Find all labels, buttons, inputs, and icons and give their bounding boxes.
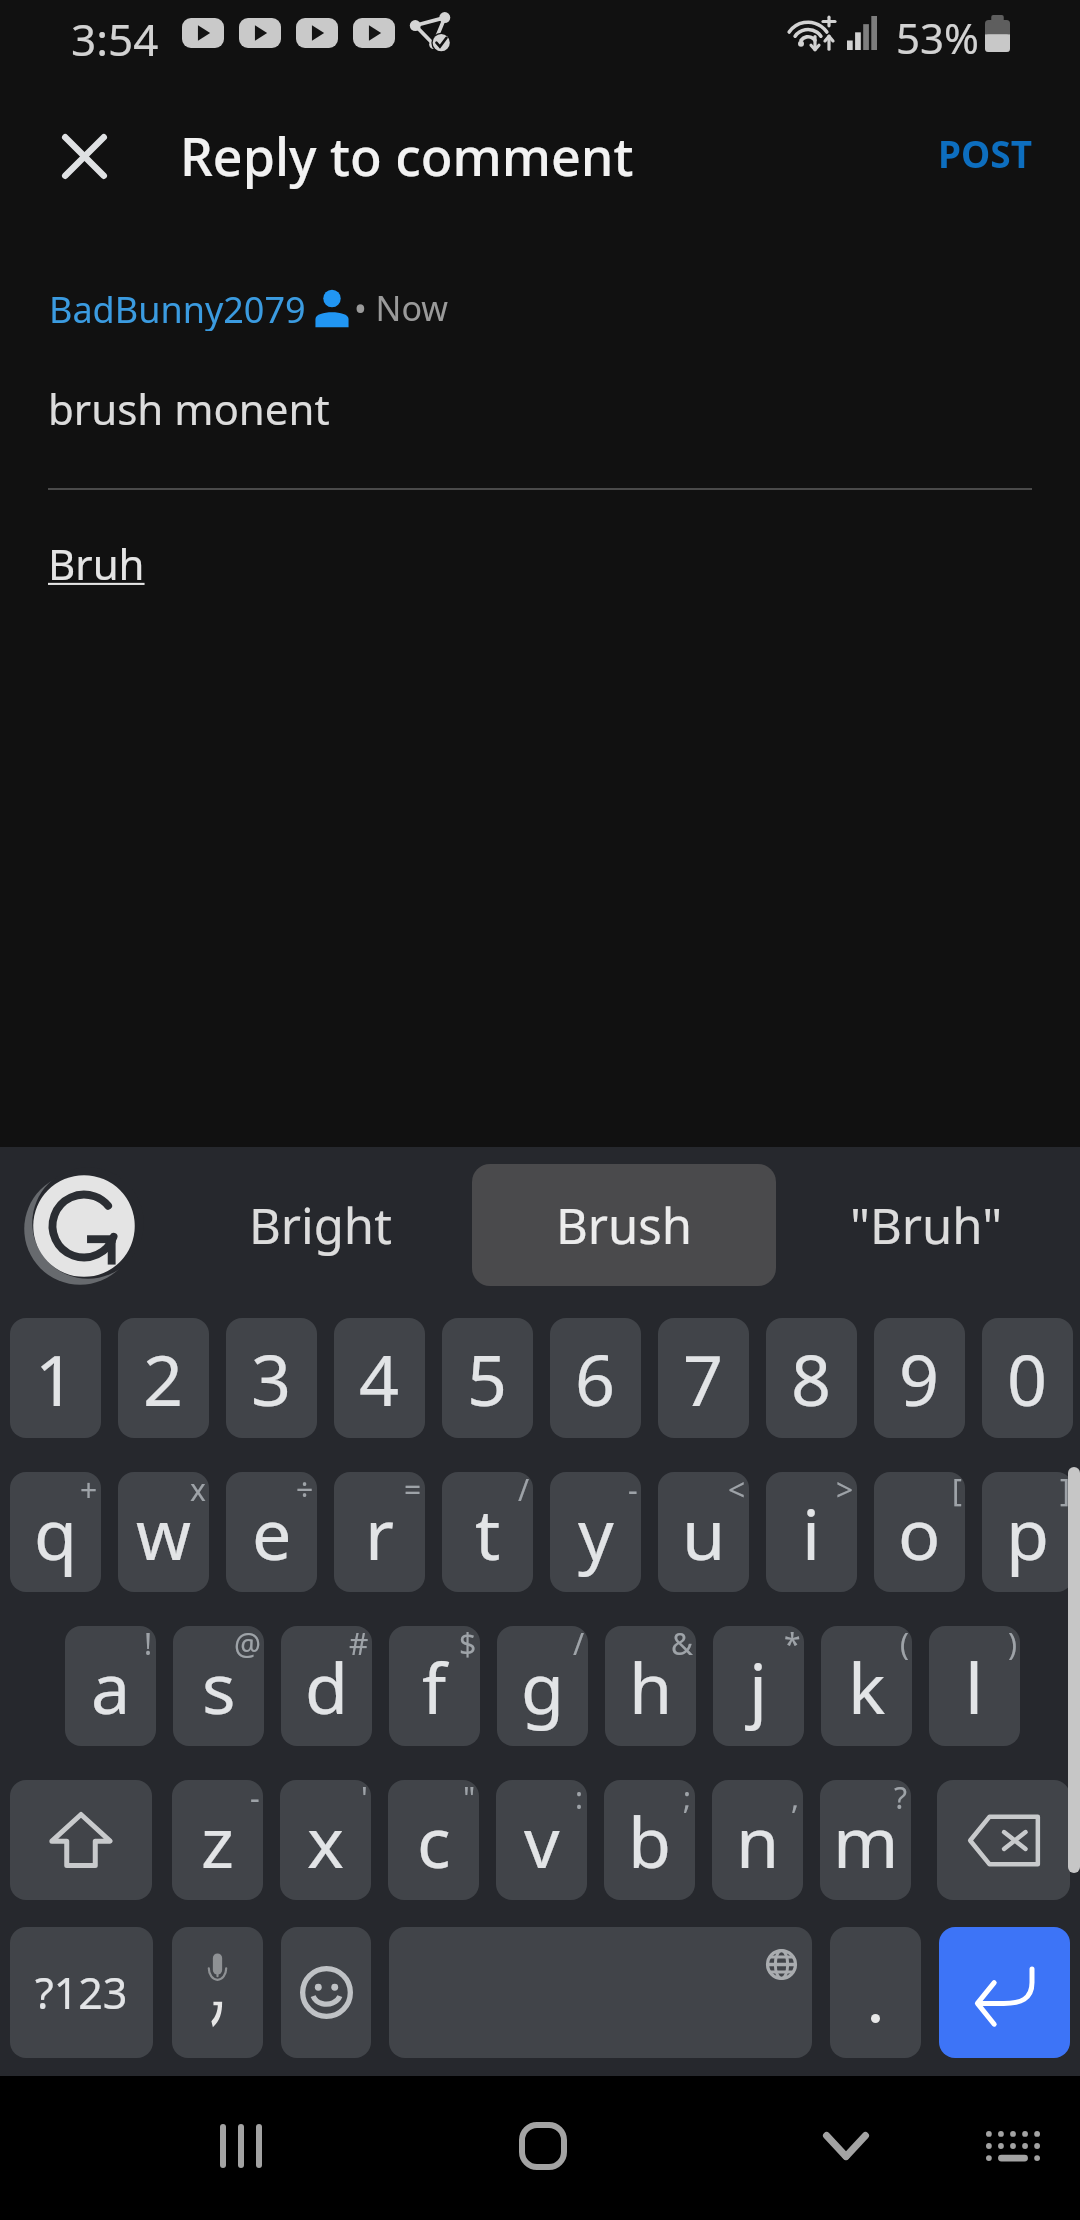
staticText: i	[802, 1485, 821, 1580]
button[interactable]: f	[389, 1626, 480, 1746]
button[interactable]: Home	[488, 2091, 598, 2201]
button[interactable]: Brush	[472, 1164, 776, 1286]
button[interactable]: a	[65, 1626, 156, 1746]
staticText: v	[524, 1793, 560, 1888]
button[interactable]: Emoji	[281, 1927, 371, 2058]
button[interactable]: 0	[982, 1318, 1073, 1438]
button[interactable]: i	[766, 1472, 857, 1592]
button[interactable]: e	[226, 1472, 317, 1592]
button[interactable]: Recents	[186, 2091, 296, 2201]
staticText: y	[578, 1485, 614, 1580]
button[interactable]: b	[604, 1780, 695, 1900]
staticText: 7	[683, 1331, 724, 1426]
button[interactable]: y	[550, 1472, 641, 1592]
staticText: q	[34, 1485, 78, 1580]
button[interactable]: 8	[766, 1318, 857, 1438]
staticText: /	[518, 1472, 530, 1510]
staticText: b	[628, 1793, 672, 1888]
button[interactable]: u	[658, 1472, 749, 1592]
staticText: e	[252, 1485, 292, 1580]
button[interactable]: Backspace	[937, 1780, 1070, 1900]
staticText: Reply to comment	[180, 120, 634, 191]
staticText: [	[952, 1472, 962, 1510]
button[interactable]: j	[713, 1626, 804, 1746]
staticText: @	[234, 1626, 261, 1664]
staticText: BadBunny2079	[49, 285, 306, 331]
staticText: 2	[143, 1331, 184, 1426]
staticText: x	[190, 1472, 206, 1510]
staticText: /	[573, 1626, 585, 1664]
button[interactable]: q	[10, 1472, 101, 1592]
button[interactable]: x	[280, 1780, 371, 1900]
button[interactable]: r	[334, 1472, 425, 1592]
button[interactable]	[830, 1927, 921, 2058]
staticText: g	[521, 1639, 565, 1734]
staticText: a	[91, 1639, 131, 1734]
button[interactable]: p	[982, 1472, 1073, 1592]
button[interactable]: g	[497, 1626, 588, 1746]
button[interactable]: n	[712, 1780, 803, 1900]
staticText: 1	[35, 1331, 76, 1426]
button[interactable]: 7	[658, 1318, 749, 1438]
staticText: 5	[467, 1331, 508, 1426]
button[interactable]: Close	[39, 111, 129, 201]
button[interactable]: z	[172, 1780, 263, 1900]
staticText: Bruh	[48, 535, 145, 592]
button[interactable]: w	[118, 1472, 209, 1592]
staticText: )	[1008, 1626, 1017, 1664]
staticText: 53%	[896, 9, 979, 57]
staticText: #	[349, 1626, 369, 1664]
button[interactable]: Space	[389, 1927, 812, 2058]
button[interactable]: ?123	[10, 1927, 153, 2058]
button[interactable]: v	[496, 1780, 587, 1900]
staticText: Bright	[249, 1192, 392, 1259]
button[interactable]: t	[442, 1472, 533, 1592]
staticText: m	[833, 1793, 899, 1888]
button[interactable]: Grammarly	[30, 1172, 138, 1280]
button[interactable]: 3	[226, 1318, 317, 1438]
button[interactable]: s	[173, 1626, 264, 1746]
staticText: r	[365, 1485, 394, 1580]
button[interactable]: 5	[442, 1318, 533, 1438]
staticText: -	[628, 1472, 638, 1510]
staticText: s	[202, 1639, 236, 1734]
staticText: ?	[894, 1780, 908, 1818]
button[interactable]: POST	[918, 112, 1052, 194]
button[interactable]: o	[874, 1472, 965, 1592]
staticText: w	[136, 1485, 192, 1580]
button[interactable]: l	[929, 1626, 1020, 1746]
button[interactable]: "Bruh"	[776, 1164, 1076, 1286]
staticText: ]	[1060, 1472, 1070, 1510]
staticText: !	[144, 1626, 153, 1664]
staticText: "	[463, 1780, 476, 1818]
button[interactable]: k	[821, 1626, 912, 1746]
button[interactable]: 1	[10, 1318, 101, 1438]
button[interactable]: 2	[118, 1318, 209, 1438]
staticText: z	[201, 1793, 234, 1888]
staticText: "Bruh"	[850, 1192, 1003, 1259]
button[interactable]: Voice input	[172, 1927, 263, 2058]
staticText: h	[629, 1639, 673, 1734]
button[interactable]: 4	[334, 1318, 425, 1438]
button[interactable]: m	[820, 1780, 911, 1900]
staticText: +	[80, 1472, 98, 1510]
staticText: :	[575, 1780, 584, 1818]
staticText: Brush	[556, 1192, 693, 1259]
staticText: ÷	[296, 1472, 314, 1510]
staticText: ?123	[35, 1963, 128, 2022]
button[interactable]: h	[605, 1626, 696, 1746]
button[interactable]: Bright	[168, 1164, 472, 1286]
button[interactable]: Enter	[939, 1927, 1070, 2058]
button[interactable]: Hide keyboard	[791, 2091, 901, 2201]
staticText: 6	[575, 1331, 616, 1426]
staticText: >	[836, 1472, 854, 1510]
button[interactable]: d	[281, 1626, 372, 1746]
staticText: *	[784, 1626, 801, 1664]
button[interactable]: c	[388, 1780, 479, 1900]
button[interactable]: Shift	[10, 1780, 152, 1900]
staticText: -	[250, 1780, 260, 1818]
staticText: (	[900, 1626, 909, 1664]
button[interactable]: 6	[550, 1318, 641, 1438]
button[interactable]: 9	[874, 1318, 965, 1438]
button[interactable]: Keyboard switcher	[958, 2091, 1068, 2201]
